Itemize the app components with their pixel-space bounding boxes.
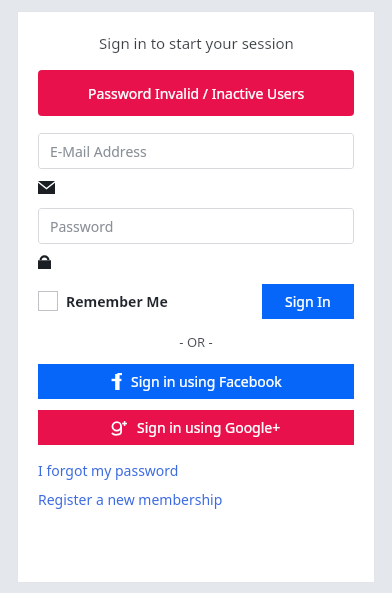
staticText: Sign in using Facebook	[131, 372, 282, 391]
button[interactable]: I forgot my password	[38, 461, 179, 480]
button[interactable]: E-Mail Address	[38, 133, 354, 169]
button[interactable]: Password	[38, 208, 354, 244]
staticText: I forgot my password	[38, 461, 179, 480]
staticText: Register a new membership	[38, 490, 223, 509]
staticText: Remember Me	[66, 292, 168, 311]
button[interactable]: Sign in using Facebook	[38, 364, 354, 399]
other: Password	[38, 251, 58, 271]
button[interactable]: Register a new membership	[38, 490, 223, 509]
staticText: E-Mail Address	[50, 142, 147, 161]
staticText: Sign In	[285, 292, 331, 311]
staticText: - OR -	[179, 333, 213, 351]
staticText: Password	[50, 217, 114, 236]
other: Email	[38, 177, 58, 197]
button[interactable]: Password Invalid / Inactive Users	[38, 70, 354, 116]
button[interactable]: Sign in using Google+	[38, 410, 354, 445]
button[interactable]: Sign In	[262, 284, 354, 319]
staticText: Sign in using Google+	[137, 418, 281, 437]
staticText: Password Invalid / Inactive Users	[88, 84, 305, 103]
staticText: Sign in to start your session	[99, 33, 294, 53]
button[interactable]: Remember Me	[38, 291, 168, 311]
